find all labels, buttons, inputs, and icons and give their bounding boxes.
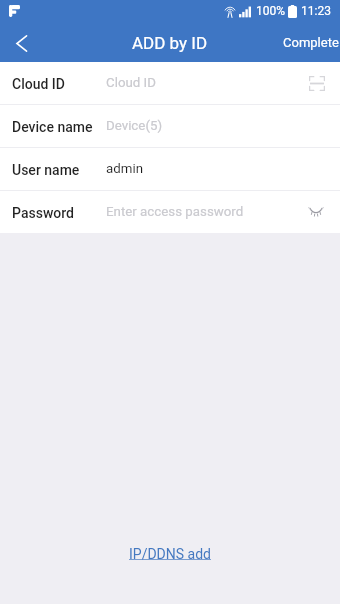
button[interactable]: Scan QR code xyxy=(304,69,330,97)
staticText: Cloud ID xyxy=(12,76,65,92)
button[interactable]: Complete xyxy=(273,25,340,60)
staticText: 11:23 xyxy=(301,4,331,18)
button[interactable]: User name xyxy=(0,148,340,190)
staticText: admin xyxy=(106,161,143,177)
button[interactable]: Device name xyxy=(0,105,340,147)
staticText: Complete xyxy=(283,35,339,50)
button[interactable]: Show password xyxy=(304,198,330,226)
staticText: ADD by ID xyxy=(132,33,208,53)
button[interactable]: Cloud ID xyxy=(0,62,340,104)
button[interactable]: IP/DDNS add xyxy=(123,543,217,565)
button[interactable]: Back xyxy=(0,22,42,62)
button[interactable]: Password xyxy=(0,191,340,233)
staticText: 100% xyxy=(256,4,286,18)
staticText: Enter access password xyxy=(106,204,244,220)
staticText: Device(5) xyxy=(106,118,163,134)
staticText: Device name xyxy=(12,119,93,135)
staticText: Cloud ID xyxy=(106,75,156,91)
staticText: Password xyxy=(12,205,75,221)
staticText: User name xyxy=(12,162,80,178)
staticText: IP/DDNS add xyxy=(129,546,211,562)
